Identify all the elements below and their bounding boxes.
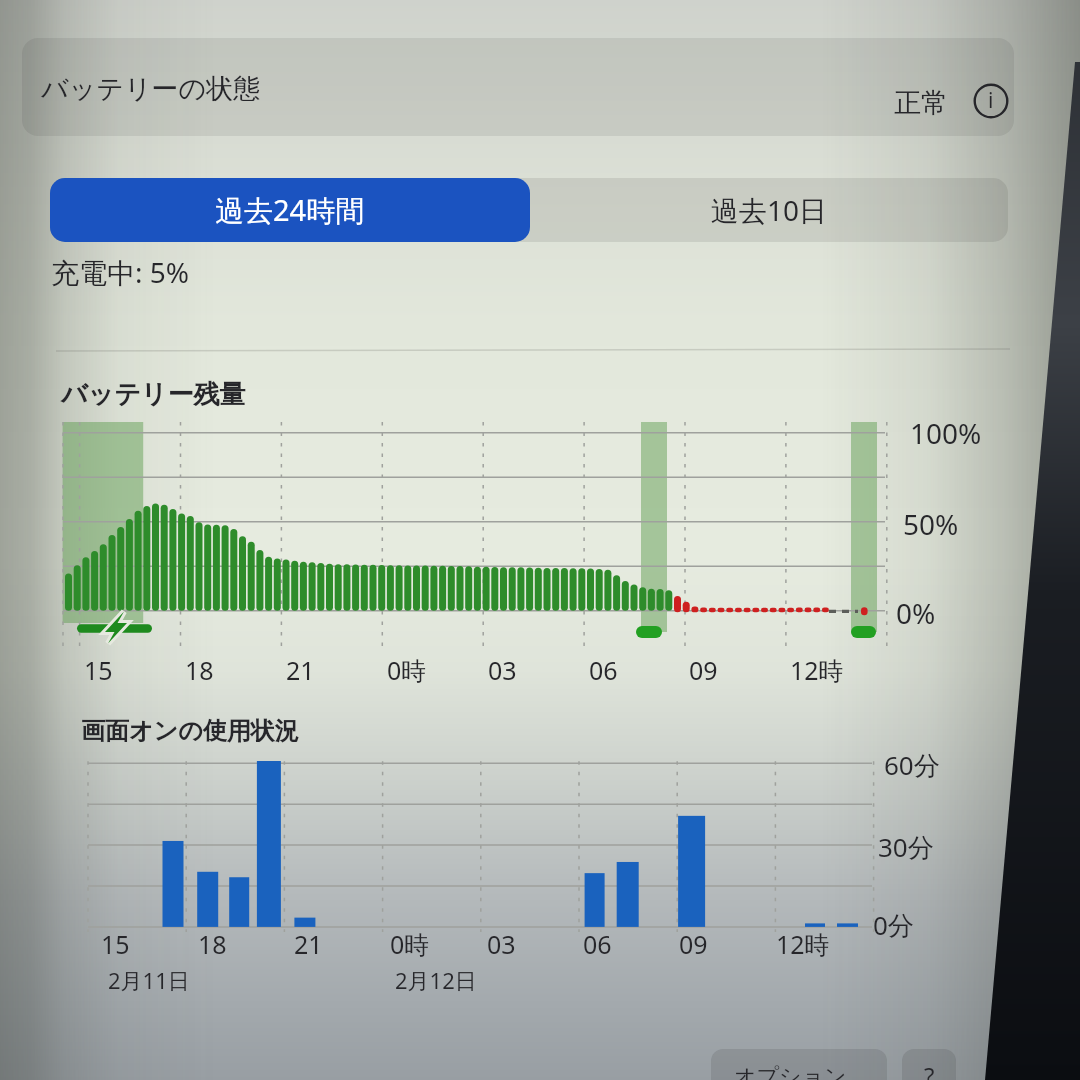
staticText: バッテリー残量 — [61, 378, 246, 411]
button[interactable]: バッテリーの状態 — [22, 38, 1014, 136]
staticText: 画面オンの使用状況 — [81, 716, 299, 746]
staticText: 0時 — [387, 653, 427, 687]
staticText: 09 — [679, 927, 708, 961]
staticText: 充電中: 5% — [51, 253, 190, 291]
staticText: 12時 — [790, 653, 844, 687]
staticText: 100% — [910, 414, 982, 452]
staticText: 15 — [101, 927, 130, 961]
staticText: ? — [924, 1059, 935, 1080]
staticText: オプション... — [734, 1060, 865, 1080]
staticText: バッテリーの状態 — [41, 72, 261, 106]
button[interactable]: ヘルプ — [902, 1049, 956, 1080]
staticText: 18 — [198, 927, 227, 961]
staticText: 0% — [896, 594, 936, 632]
staticText: 2月12日 — [395, 965, 477, 995]
button[interactable]: 過去24時間 — [50, 178, 530, 242]
staticText: 06 — [583, 927, 612, 961]
staticText: 正常 — [894, 86, 948, 120]
staticText: 過去24時間 — [215, 190, 365, 230]
staticText: 21 — [294, 927, 323, 961]
staticText: i — [988, 86, 994, 115]
staticText: 03 — [487, 927, 516, 961]
staticText: 12時 — [776, 927, 830, 961]
staticText: 30分 — [878, 829, 934, 865]
button[interactable]: 過去10日 — [530, 178, 1008, 242]
staticText: 21 — [286, 653, 315, 687]
staticText: 18 — [185, 653, 214, 687]
staticText: 06 — [589, 653, 618, 687]
staticText: 2月11日 — [108, 965, 190, 995]
button[interactable]: 詳細情報 — [970, 80, 1012, 122]
staticText: 過去10日 — [711, 191, 828, 229]
staticText: 50% — [903, 505, 959, 543]
staticText: 0時 — [390, 927, 430, 961]
button[interactable]: オプション... — [711, 1049, 887, 1080]
staticText: 60分 — [884, 747, 940, 783]
staticText: 03 — [488, 653, 517, 687]
staticText: 0分 — [873, 907, 914, 943]
staticText: 09 — [689, 653, 718, 687]
staticText: 15 — [84, 653, 113, 687]
